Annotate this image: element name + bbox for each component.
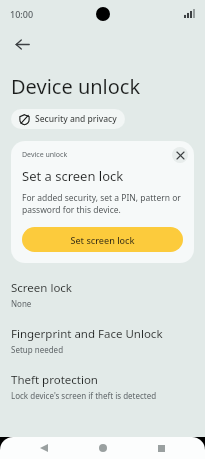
button[interactable]: Back [29,437,59,459]
staticText: Theft protection [11,372,98,388]
staticText: Security and privacy [35,113,117,125]
staticText: Set a screen lock [22,167,124,185]
staticText: Setup needed [11,344,64,355]
button[interactable]: Theft protection [0,371,205,402]
button[interactable]: Home [88,437,118,459]
button[interactable]: Security and privacy [11,109,125,129]
button[interactable]: Set screen lock [22,227,183,252]
staticText: Device unlock [11,73,141,100]
staticText: Set screen lock [70,234,135,246]
staticText: 10:00 [10,8,34,20]
button[interactable]: Screen lock [0,279,205,310]
button[interactable]: Recent apps [146,437,176,459]
button[interactable]: Dismiss [172,147,188,163]
staticText: Fingerprint and Face Unlock [11,326,163,342]
staticText: Device unlock [22,150,68,160]
button[interactable]: Fingerprint and Face Unlock [0,325,205,356]
button[interactable]: Back [5,27,39,61]
staticText: Lock device's screen if theft is detecte… [11,390,157,401]
staticText: For added security, set a PIN, pattern o… [22,192,183,216]
staticText: Screen lock [11,280,73,296]
staticText: None [11,298,32,309]
